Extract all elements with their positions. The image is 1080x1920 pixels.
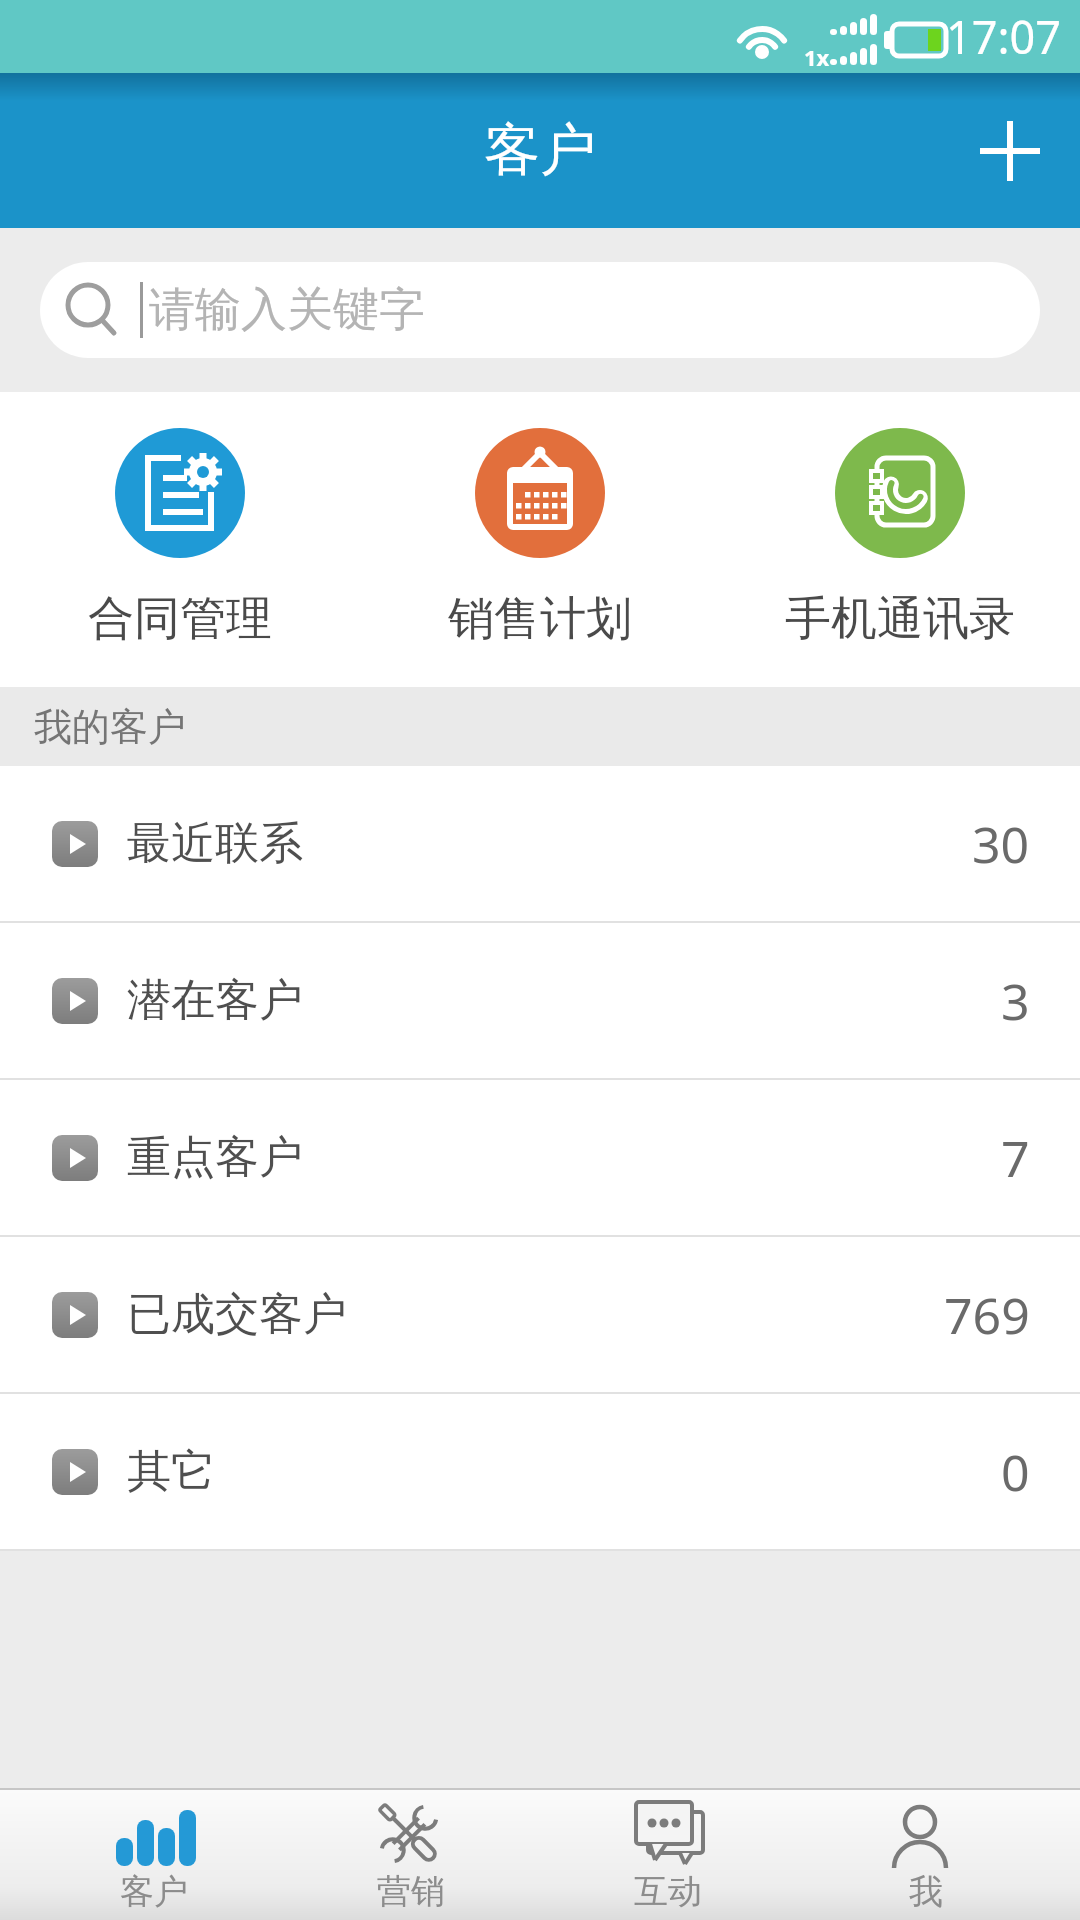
button[interactable]: 潜在客户 [0, 923, 1080, 1078]
button[interactable]: 销售计划 [360, 392, 720, 687]
staticText: 手机通讯录 [785, 590, 1015, 648]
staticText: 0 [1001, 1438, 1030, 1506]
staticText: 销售计划 [448, 590, 632, 648]
button[interactable]: 互动 [539, 1790, 797, 1920]
staticText: 合同管理 [88, 590, 272, 648]
staticText: 客户 [120, 1870, 188, 1913]
button[interactable]: 客户 [25, 1790, 282, 1920]
staticText: 潜在客户 [127, 973, 303, 1028]
staticText: 我 [909, 1870, 943, 1913]
staticText: 重点客户 [127, 1130, 303, 1185]
staticText: 最近联系 [127, 816, 303, 871]
button[interactable]: 合同管理 [0, 392, 360, 687]
button[interactable]: 重点客户 [0, 1080, 1080, 1235]
staticText: 7 [1001, 1124, 1030, 1192]
staticText: 1x [804, 42, 830, 72]
staticText: 我的客户 [34, 703, 186, 751]
button[interactable]: 营销 [282, 1790, 539, 1920]
staticText: 30 [972, 810, 1030, 878]
button[interactable]: 手机通讯录 [720, 392, 1080, 687]
staticText: 3 [1001, 967, 1030, 1035]
staticText: 其它 [127, 1444, 215, 1499]
button[interactable] [978, 119, 1042, 183]
staticText: 客户 [484, 115, 596, 186]
staticText: 769 [944, 1281, 1030, 1349]
staticText: 营销 [377, 1870, 445, 1913]
button[interactable]: 请输入关键字 [40, 262, 1040, 358]
button[interactable]: 最近联系 [0, 766, 1080, 921]
button[interactable]: 其它 [0, 1394, 1080, 1549]
button[interactable]: 已成交客户 [0, 1237, 1080, 1392]
staticText: 已成交客户 [127, 1287, 347, 1342]
staticText: 17:07 [946, 6, 1062, 67]
staticText: 请输入关键字 [149, 281, 425, 339]
staticText: 互动 [634, 1870, 702, 1913]
button[interactable]: 我 [797, 1790, 1055, 1920]
